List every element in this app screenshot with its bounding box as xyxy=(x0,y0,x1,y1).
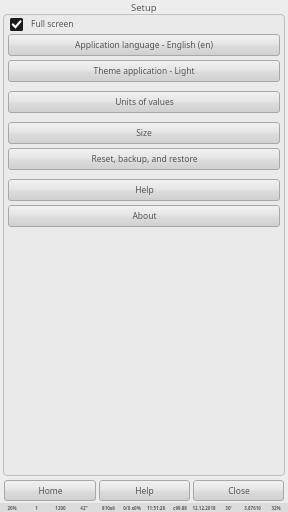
staticText: 30' xyxy=(225,505,232,511)
button[interactable]: Application language - English (en) xyxy=(8,34,280,56)
staticText: Close xyxy=(228,485,250,497)
staticText: 20% xyxy=(7,505,17,511)
button[interactable]: Close xyxy=(193,480,284,501)
button[interactable]: Units of values xyxy=(8,91,280,113)
staticText: Help xyxy=(135,485,154,497)
staticText: Units of values xyxy=(115,96,174,108)
button[interactable]: Help xyxy=(8,179,280,201)
staticText: 0/0 x0% xyxy=(123,505,141,511)
staticText: 42" xyxy=(80,505,88,511)
button[interactable]: Size xyxy=(8,122,280,144)
staticText: c99.88 xyxy=(173,505,187,511)
staticText: Reset, backup, and restore xyxy=(91,153,198,165)
staticText: 3.87616 xyxy=(244,505,261,511)
staticText: 1 xyxy=(35,505,38,511)
staticText: Full screen xyxy=(31,18,74,30)
staticText: 810x6 xyxy=(102,505,115,511)
button[interactable]: Home xyxy=(4,480,96,501)
staticText: 12.12.2018 xyxy=(192,505,216,511)
button[interactable]: Full screen xyxy=(3,14,285,34)
staticText: Theme application - Light xyxy=(93,65,195,77)
button[interactable]: Theme application - Light xyxy=(8,60,280,82)
staticText: Setup xyxy=(131,1,157,14)
staticText: About xyxy=(132,210,157,222)
button[interactable]: Reset, backup, and restore xyxy=(8,148,280,170)
staticText: 1200 xyxy=(55,505,66,511)
button[interactable]: About xyxy=(8,205,280,227)
staticText: 11:51:28 xyxy=(147,505,165,511)
staticText: Size xyxy=(136,127,152,139)
button[interactable]: Help xyxy=(99,480,190,501)
staticText: Application language - English (en) xyxy=(75,39,213,51)
staticText: 32% xyxy=(271,505,281,511)
staticText: Home xyxy=(38,485,63,497)
staticText: Help xyxy=(135,184,154,196)
